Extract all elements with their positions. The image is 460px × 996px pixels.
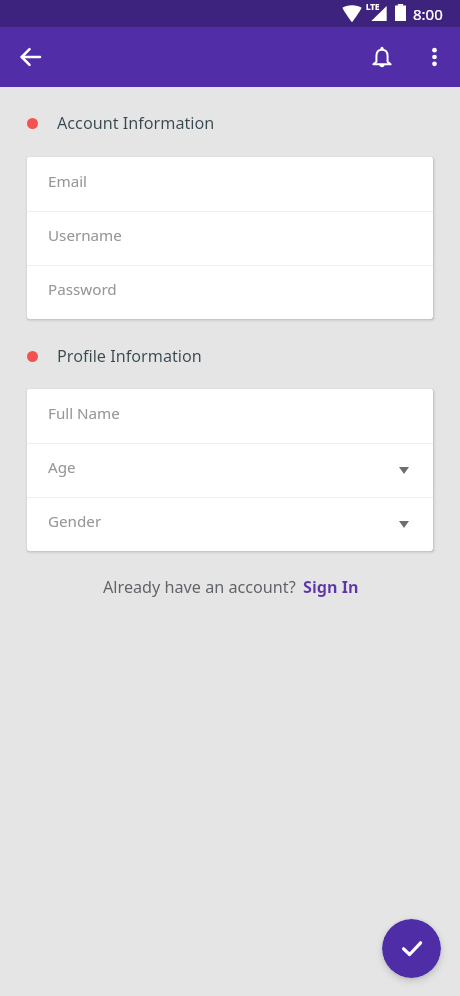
button[interactable]: Back — [8, 35, 52, 79]
button[interactable]: Age — [27, 444, 433, 497]
staticText: Age — [48, 457, 76, 478]
staticText: 8:00 — [413, 4, 443, 24]
button[interactable]: Username — [27, 212, 433, 265]
staticText: Account Information — [57, 112, 215, 134]
staticText: Already have an account? — [103, 576, 296, 598]
button[interactable]: Password — [27, 266, 433, 319]
button[interactable]: Sign In — [303, 576, 359, 598]
staticText: Profile Information — [57, 345, 202, 367]
staticText: Full Name — [48, 403, 120, 424]
staticText: LTE — [366, 1, 380, 12]
button[interactable]: Full Name — [27, 389, 433, 443]
button[interactable]: Notifications — [360, 35, 404, 79]
staticText: Email — [48, 171, 88, 192]
staticText: Gender — [48, 511, 102, 532]
staticText: Sign In — [303, 576, 359, 598]
staticText: Username — [48, 225, 122, 246]
button[interactable]: Submit — [382, 919, 441, 978]
button[interactable]: Email — [27, 157, 433, 211]
button[interactable]: Gender — [27, 498, 433, 551]
staticText: Password — [48, 279, 117, 300]
button[interactable]: More options — [412, 35, 456, 79]
